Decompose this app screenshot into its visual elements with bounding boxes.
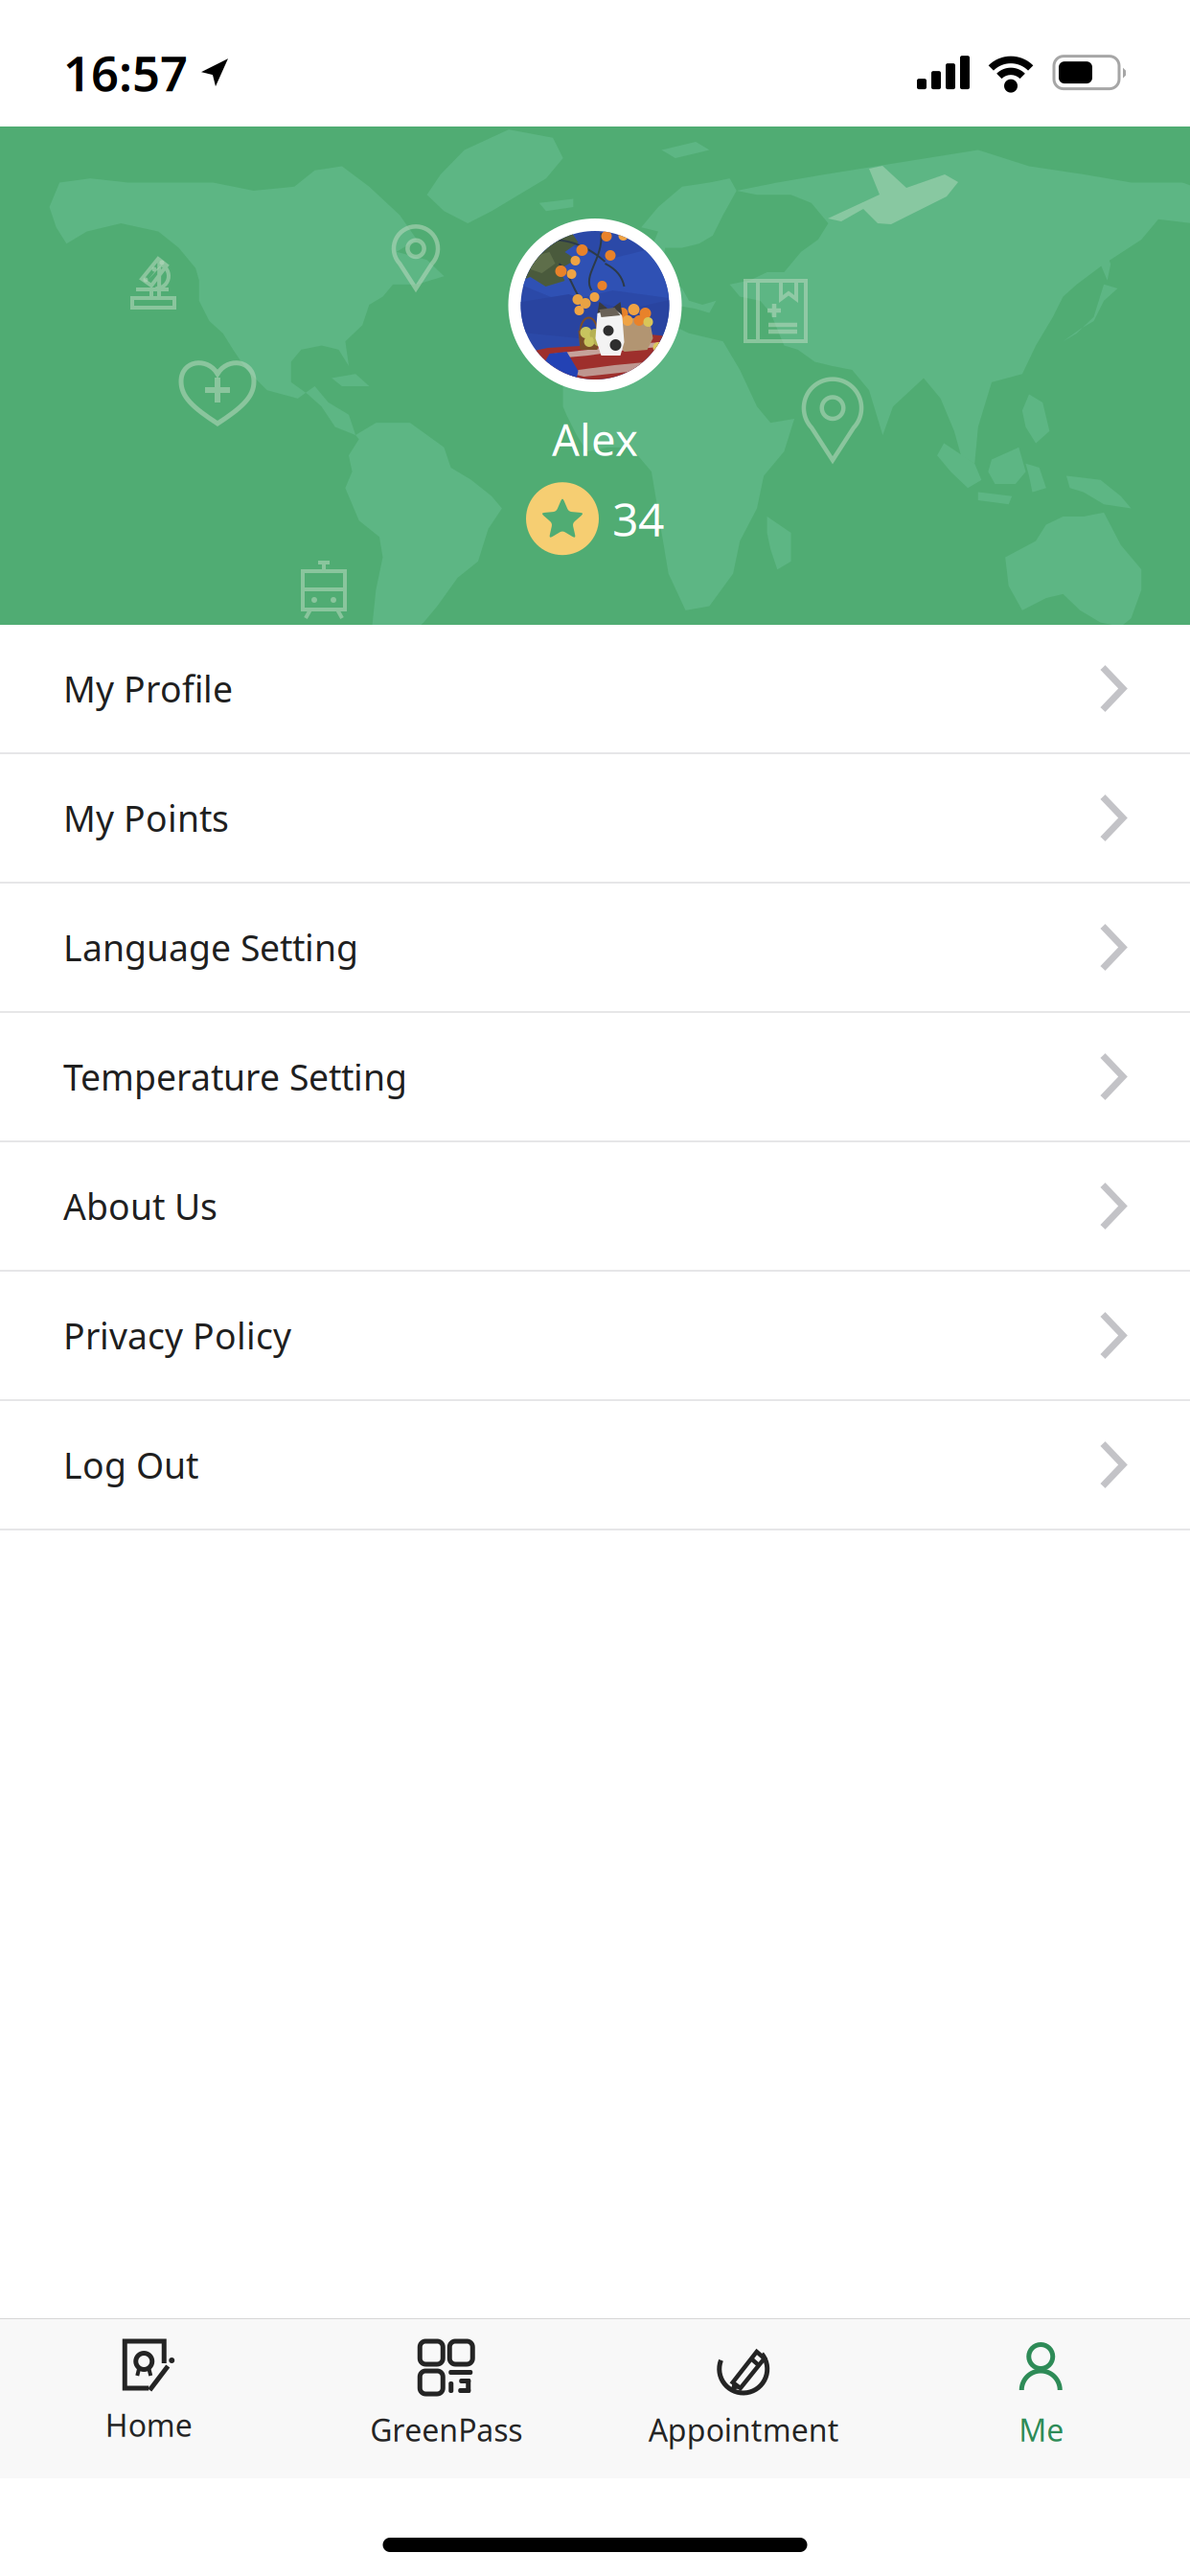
staticText: Privacy Policy [63,1312,291,1359]
button[interactable]: Temperature Setting [0,1013,1190,1142]
staticText: Log Out [63,1441,198,1489]
staticText: About Us [63,1182,217,1230]
staticText: Home [105,2404,192,2445]
button[interactable]: Me [892,2319,1190,2478]
button[interactable]: My Points [0,754,1190,884]
staticText: Temperature Setting [63,1053,407,1100]
staticText: 16:57 [63,40,188,105]
staticText: GreenPass [370,2409,522,2450]
button[interactable]: Appointment [595,2319,892,2478]
staticText: Language Setting [63,924,358,971]
staticText: Alex [552,410,638,468]
button[interactable]: Log Out [0,1401,1190,1530]
button[interactable]: My Profile [0,625,1190,754]
staticText: Appointment [648,2409,839,2450]
button[interactable]: GreenPass [297,2319,595,2478]
staticText: 34 [612,488,664,549]
button[interactable]: Language Setting [0,884,1190,1013]
staticText: My Points [63,794,229,842]
staticText: Me [1019,2409,1064,2450]
button[interactable]: Privacy Policy [0,1272,1190,1401]
button[interactable]: About Us [0,1142,1190,1272]
staticText: My Profile [63,665,233,712]
button[interactable]: Home [0,2319,297,2478]
